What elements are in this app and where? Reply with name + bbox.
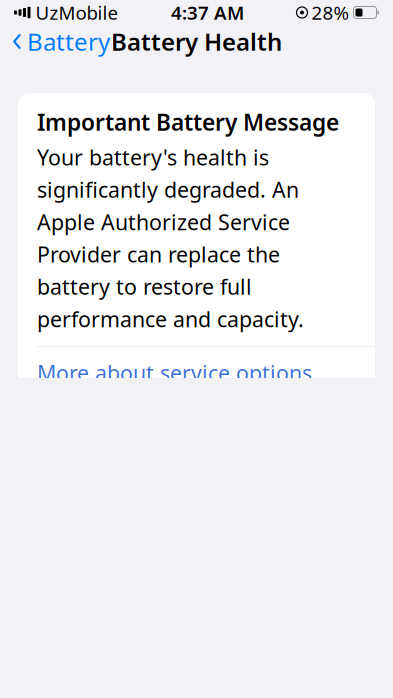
staticText: Battery Health (111, 26, 282, 57)
staticText: Your battery's health is significantly d… (37, 143, 304, 333)
button[interactable]: Battery (0, 20, 110, 63)
staticText: Important Battery Message (37, 107, 339, 137)
button[interactable]: More about service options... (18, 347, 375, 399)
staticText: 28% (311, 0, 349, 25)
staticText: More about service options... (37, 359, 330, 387)
staticText: Battery (27, 26, 110, 57)
staticText: UzMobile (35, 0, 118, 25)
staticText: 4:37 AM (171, 0, 244, 25)
